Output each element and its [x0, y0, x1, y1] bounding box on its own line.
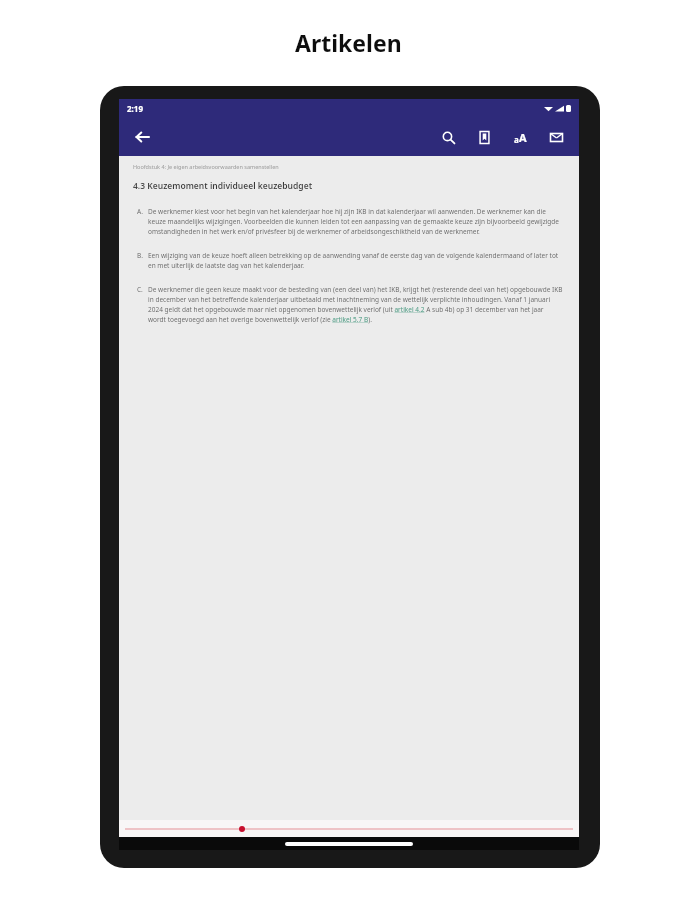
button[interactable]: Text size: [507, 124, 533, 150]
staticText: Artikelen: [295, 27, 402, 58]
staticText: B.: [137, 251, 148, 260]
button[interactable]: Bookmark: [471, 124, 497, 150]
staticText: C.: [137, 285, 148, 294]
staticText: Een wijziging van de keuze hoeft alleen …: [148, 251, 563, 270]
button[interactable]: Search: [435, 124, 461, 150]
staticText: 2:19: [127, 103, 143, 114]
staticText: a: [514, 134, 519, 145]
staticText: A.: [137, 207, 148, 216]
button[interactable]: Back: [129, 124, 155, 150]
staticText: Hoofdstuk 4: Je eigen arbeidsvoorwaarden…: [133, 163, 279, 170]
staticText: De werknemer kiest voor het begin van he…: [148, 207, 563, 236]
staticText: 4.3 Keuzemoment individueel keuzebudget: [133, 180, 313, 192]
staticText: A: [519, 130, 527, 145]
staticText: De werknemer die geen keuze maakt voor d…: [148, 285, 563, 324]
button[interactable]: Email: [543, 124, 569, 150]
